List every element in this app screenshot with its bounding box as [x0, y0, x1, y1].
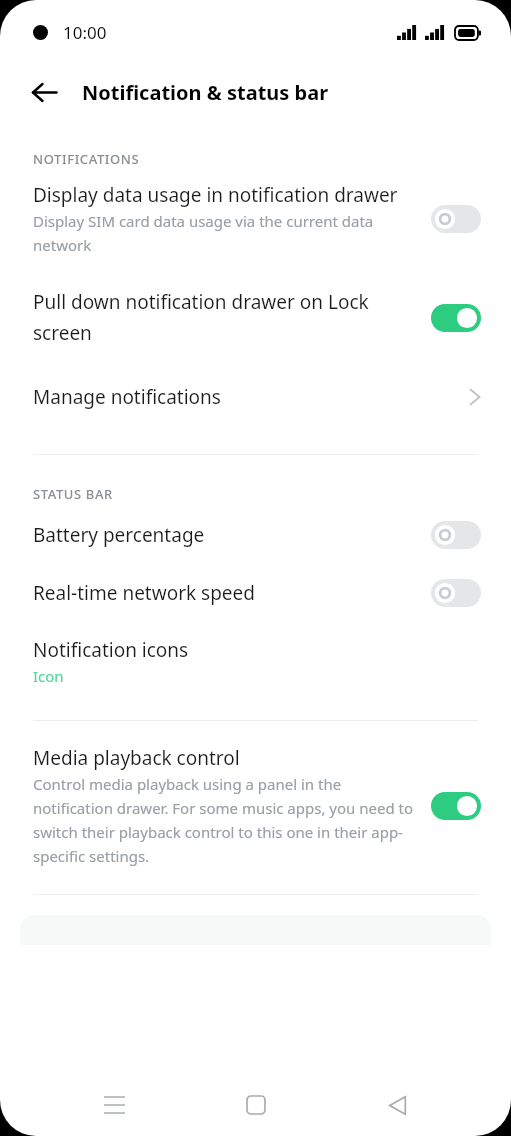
button[interactable]: Off	[431, 521, 481, 549]
staticText: Icon	[33, 666, 64, 686]
button[interactable]: Back	[20, 68, 68, 116]
button[interactable]: On	[431, 304, 481, 332]
staticText: Real-time network speed	[33, 580, 255, 606]
button[interactable]: Real-time network speed	[0, 563, 511, 621]
button[interactable]: Pull down notification drawer on Lock sc…	[0, 267, 511, 362]
staticText: Notification & status bar	[82, 79, 329, 106]
button[interactable]: Battery percentage	[0, 503, 511, 563]
button[interactable]: Display data usage in notification drawe…	[0, 168, 511, 267]
staticText: Notification icons	[33, 637, 189, 663]
staticText: Control media playback using a panel in …	[33, 774, 415, 866]
staticText: Display data usage in notification drawe…	[33, 182, 398, 208]
button[interactable]: Manage notifications	[0, 362, 511, 424]
button[interactable]: Back	[369, 1077, 425, 1133]
staticText: Media playback control	[33, 745, 240, 771]
staticText: Display SIM card data usage via the curr…	[33, 211, 415, 255]
button[interactable]: Recent apps	[86, 1077, 142, 1133]
button[interactable]: Home	[228, 1077, 284, 1133]
button[interactable]: On	[431, 792, 481, 820]
button[interactable]: Media playback control	[0, 745, 511, 876]
button[interactable]: Off	[431, 579, 481, 607]
staticText: NOTIFICATIONS	[33, 150, 140, 168]
staticText: 10:00	[63, 21, 107, 44]
staticText: Pull down notification drawer on Lock sc…	[33, 289, 415, 346]
staticText: Battery percentage	[33, 522, 205, 548]
staticText: STATUS BAR	[33, 485, 113, 503]
button[interactable]: Off	[431, 205, 481, 233]
staticText: Manage notifications	[33, 384, 469, 410]
button[interactable]: Notification icons	[0, 621, 511, 694]
